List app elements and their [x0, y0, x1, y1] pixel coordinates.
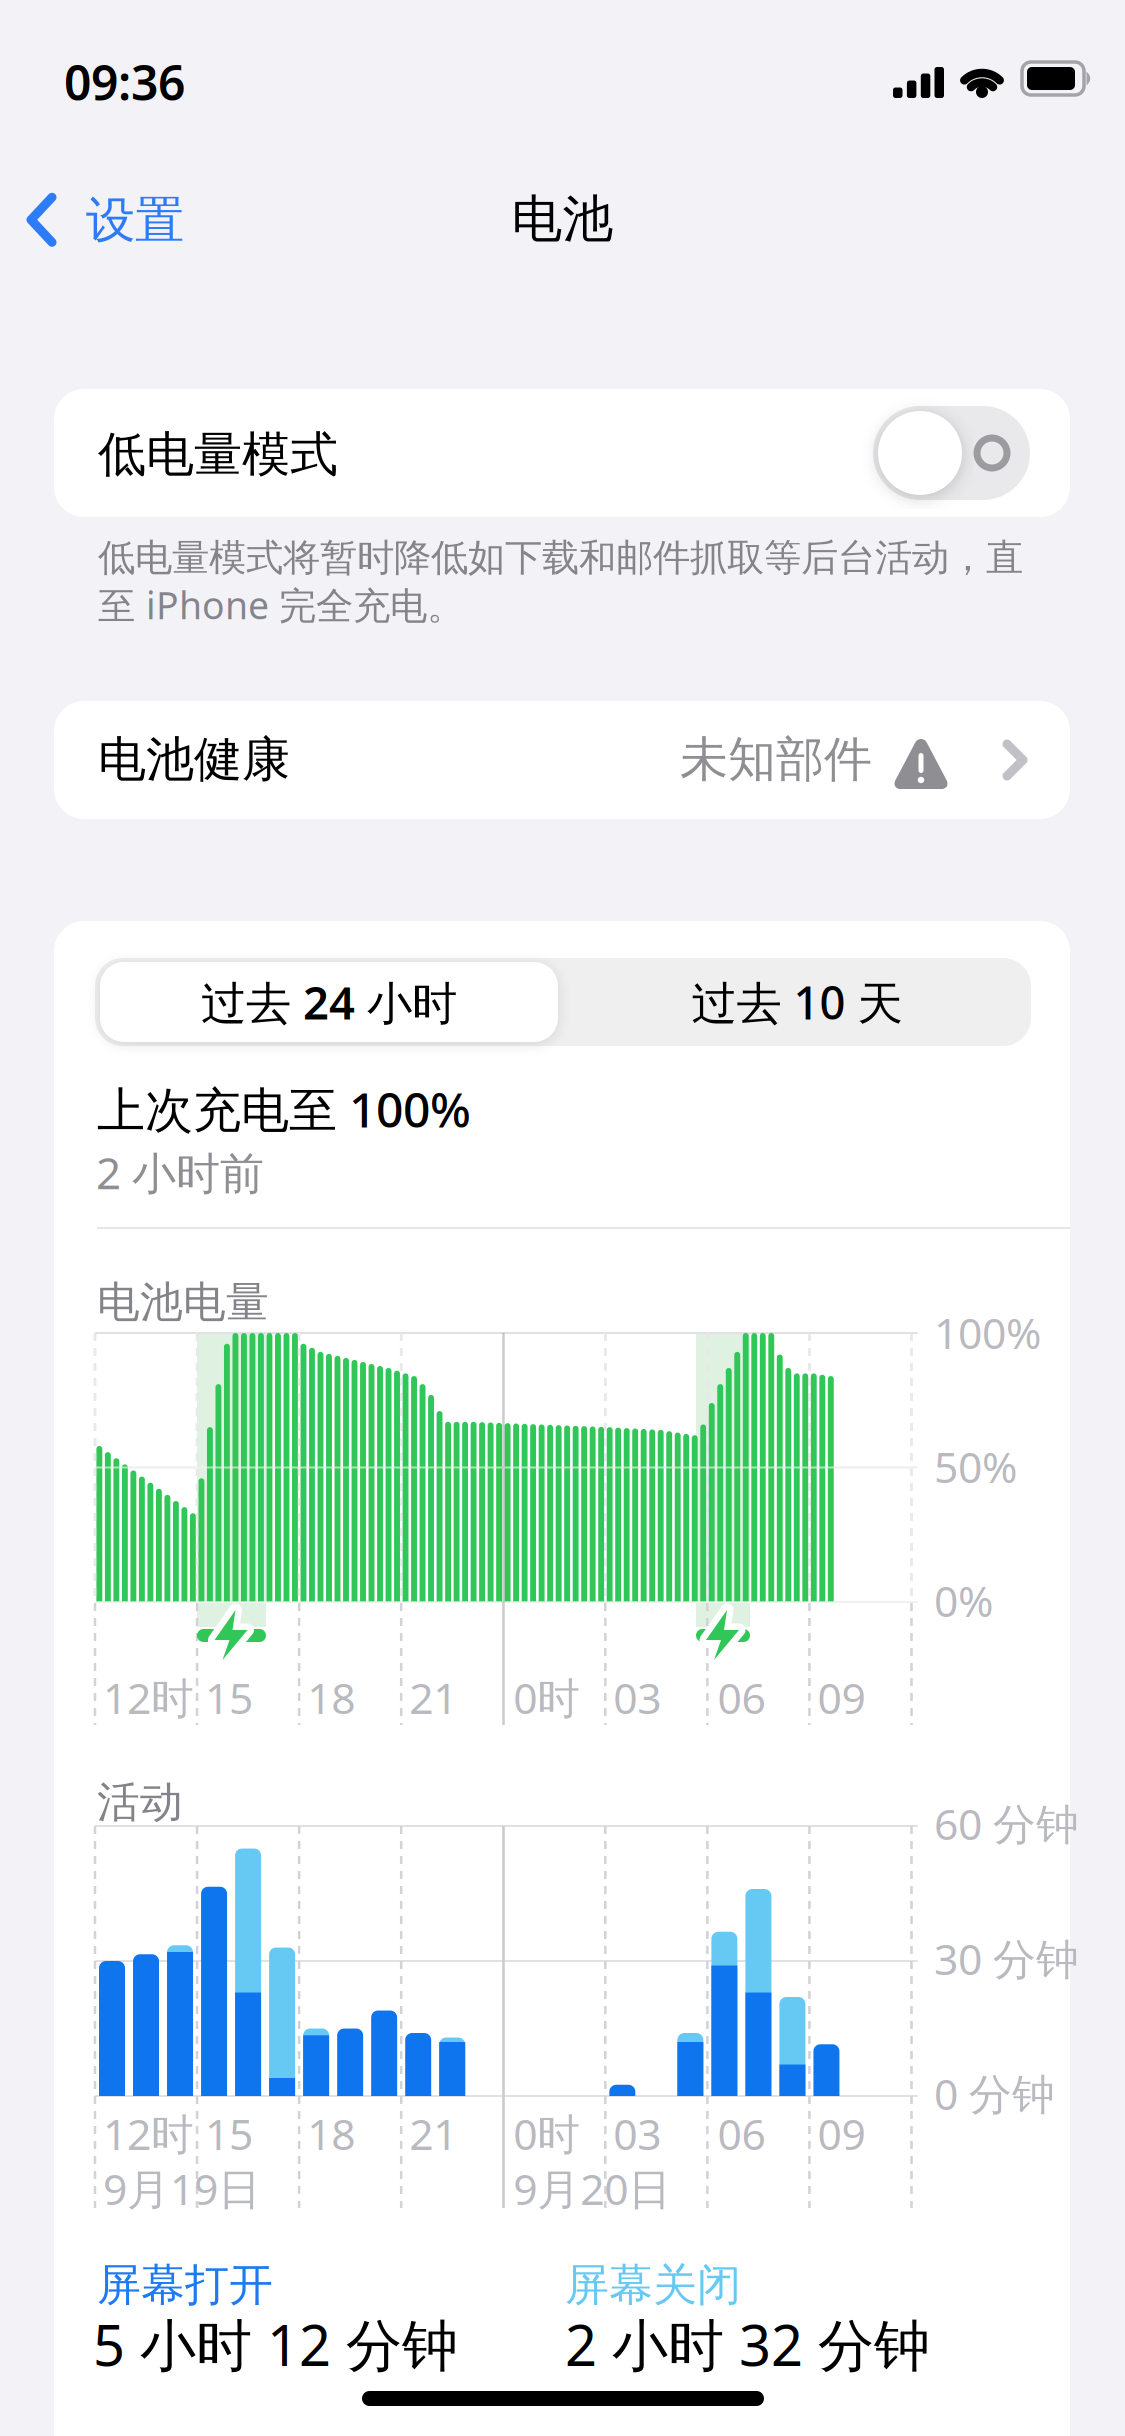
- staticText: 60 分钟: [934, 1795, 1079, 1852]
- staticText: 屏幕打开: [97, 2258, 273, 2312]
- button[interactable]: 设置: [28, 190, 184, 251]
- staticText: 0时: [513, 2105, 580, 2162]
- staticText: 15: [205, 2105, 253, 2162]
- button[interactable]: 过去 10 天: [567, 960, 1027, 1044]
- staticText: 15: [205, 1669, 253, 1726]
- staticText: 100%: [934, 1304, 1041, 1361]
- button[interactable]: 电池健康: [54, 701, 1070, 819]
- staticText: 12时: [103, 2105, 194, 2162]
- staticText: 上次充电至 100%: [97, 1077, 471, 1141]
- staticText: 至 iPhone 完全充电。: [98, 580, 464, 630]
- staticText: 18: [307, 1669, 355, 1726]
- staticText: 0%: [934, 1572, 993, 1629]
- staticText: 9月19日: [103, 2160, 261, 2217]
- staticText: 18: [307, 2105, 355, 2162]
- button[interactable]: 低电量模式: [873, 406, 1030, 500]
- button[interactable]: 过去 24 小时: [100, 962, 558, 1042]
- staticText: 未知部件: [680, 730, 872, 789]
- staticText: 屏幕关闭: [565, 2258, 741, 2312]
- staticText: 50%: [934, 1438, 1017, 1495]
- staticText: 03: [613, 1669, 661, 1726]
- staticText: 5 小时 12 分钟: [93, 2307, 458, 2381]
- staticText: 03: [613, 2105, 661, 2162]
- staticText: 电池电量: [97, 1276, 269, 1328]
- staticText: 21: [409, 2105, 457, 2162]
- staticText: 低电量模式将暂时降低如下载和邮件抓取等后台活动，直: [98, 535, 1023, 581]
- staticText: 0时: [513, 1669, 580, 1726]
- staticText: 09: [817, 2105, 865, 2162]
- staticText: 09:36: [64, 50, 185, 114]
- staticText: 活动: [97, 1776, 183, 1828]
- staticText: 电池: [511, 188, 613, 250]
- staticText: 设置: [86, 190, 184, 251]
- staticText: 21: [409, 1669, 457, 1726]
- staticText: 低电量模式: [98, 425, 338, 484]
- staticText: 过去 24 小时: [201, 972, 457, 1032]
- staticText: 12时: [103, 1669, 194, 1726]
- staticText: 06: [717, 1669, 765, 1726]
- staticText: 9月20日: [513, 2160, 671, 2217]
- staticText: 电池健康: [98, 730, 290, 789]
- staticText: 06: [717, 2105, 765, 2162]
- staticText: 09: [817, 1669, 865, 1726]
- staticText: 2 小时前: [96, 1143, 264, 1201]
- staticText: 0 分钟: [934, 2065, 1055, 2122]
- staticText: 2 小时 32 分钟: [565, 2307, 930, 2381]
- staticText: 30 分钟: [934, 1930, 1079, 1987]
- staticText: 过去 10 天: [691, 972, 902, 1032]
